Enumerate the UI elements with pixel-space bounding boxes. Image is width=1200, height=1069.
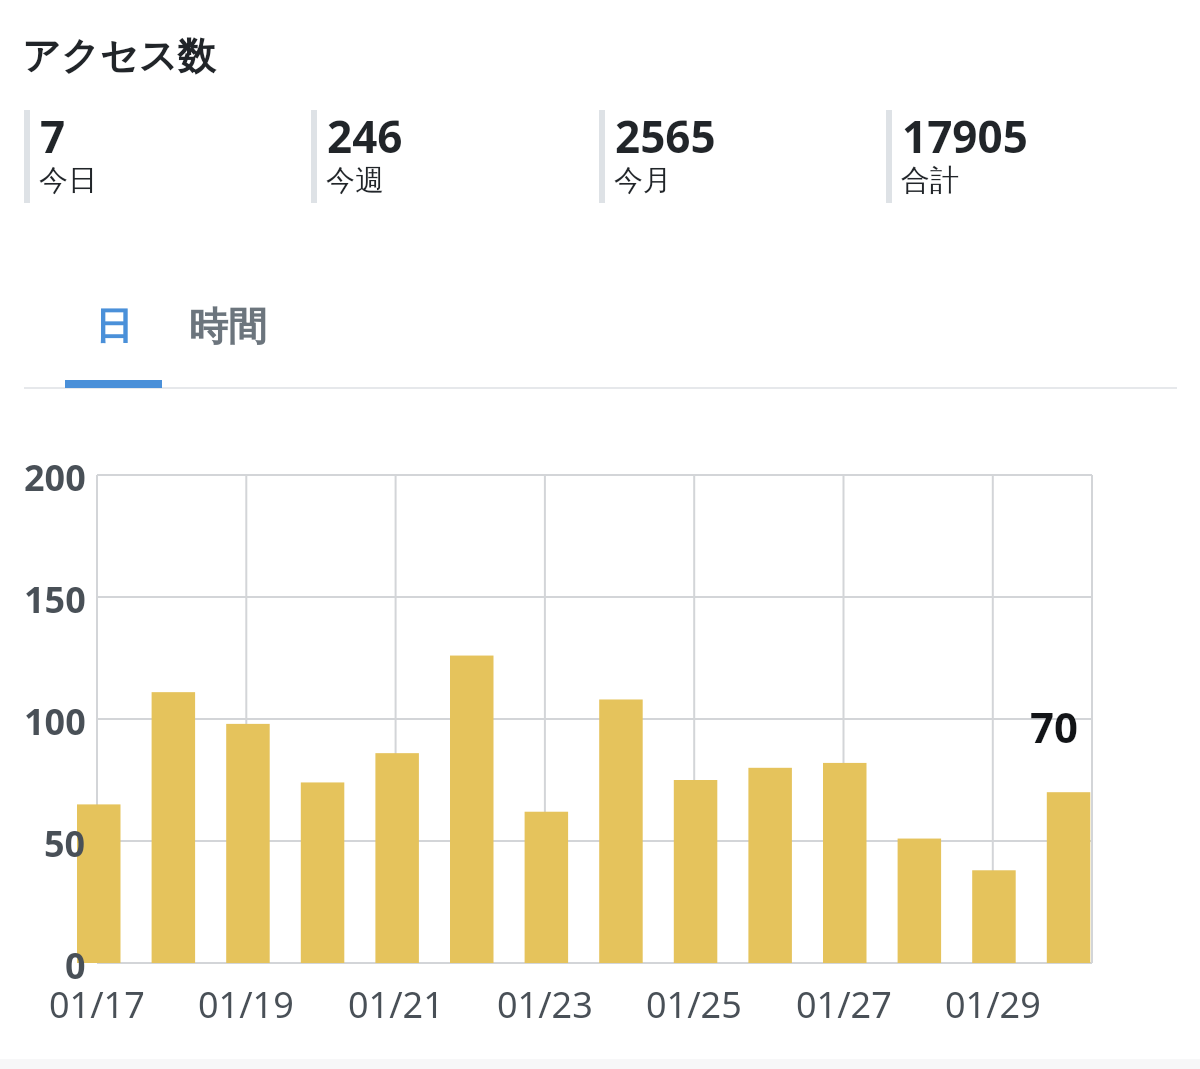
staticText: 今日 [39,162,97,199]
button[interactable]: 17905 [886,110,1166,203]
staticText: 70 [1030,698,1079,755]
staticText: 日 [95,302,133,350]
staticText: 100 [24,697,86,746]
staticText: 150 [24,575,86,624]
button[interactable]: 246 [311,110,591,203]
staticText: 今週 [326,162,384,199]
staticText: 01/21 [348,980,444,1029]
staticText: 01/19 [198,980,294,1029]
staticText: 01/29 [945,980,1041,1029]
staticText: アクセス数 [22,32,216,80]
button[interactable]: 2565 [599,110,879,203]
staticText: 246 [327,106,403,166]
button[interactable]: 日 [65,290,162,388]
staticText: 50 [44,819,86,868]
staticText: 今月 [614,162,672,199]
staticText: 01/17 [49,980,145,1029]
staticText: 2565 [615,106,716,166]
button[interactable]: 7 [24,110,304,203]
staticText: 01/25 [646,980,742,1029]
staticText: 01/27 [796,980,892,1029]
staticText: 200 [24,453,86,502]
staticText: 合計 [901,162,959,199]
staticText: 7 [40,106,66,166]
button[interactable]: 時間 [162,290,294,388]
staticText: 時間 [189,302,267,351]
staticText: 0 [65,941,86,990]
staticText: 17905 [902,106,1028,166]
staticText: 01/23 [497,980,593,1029]
